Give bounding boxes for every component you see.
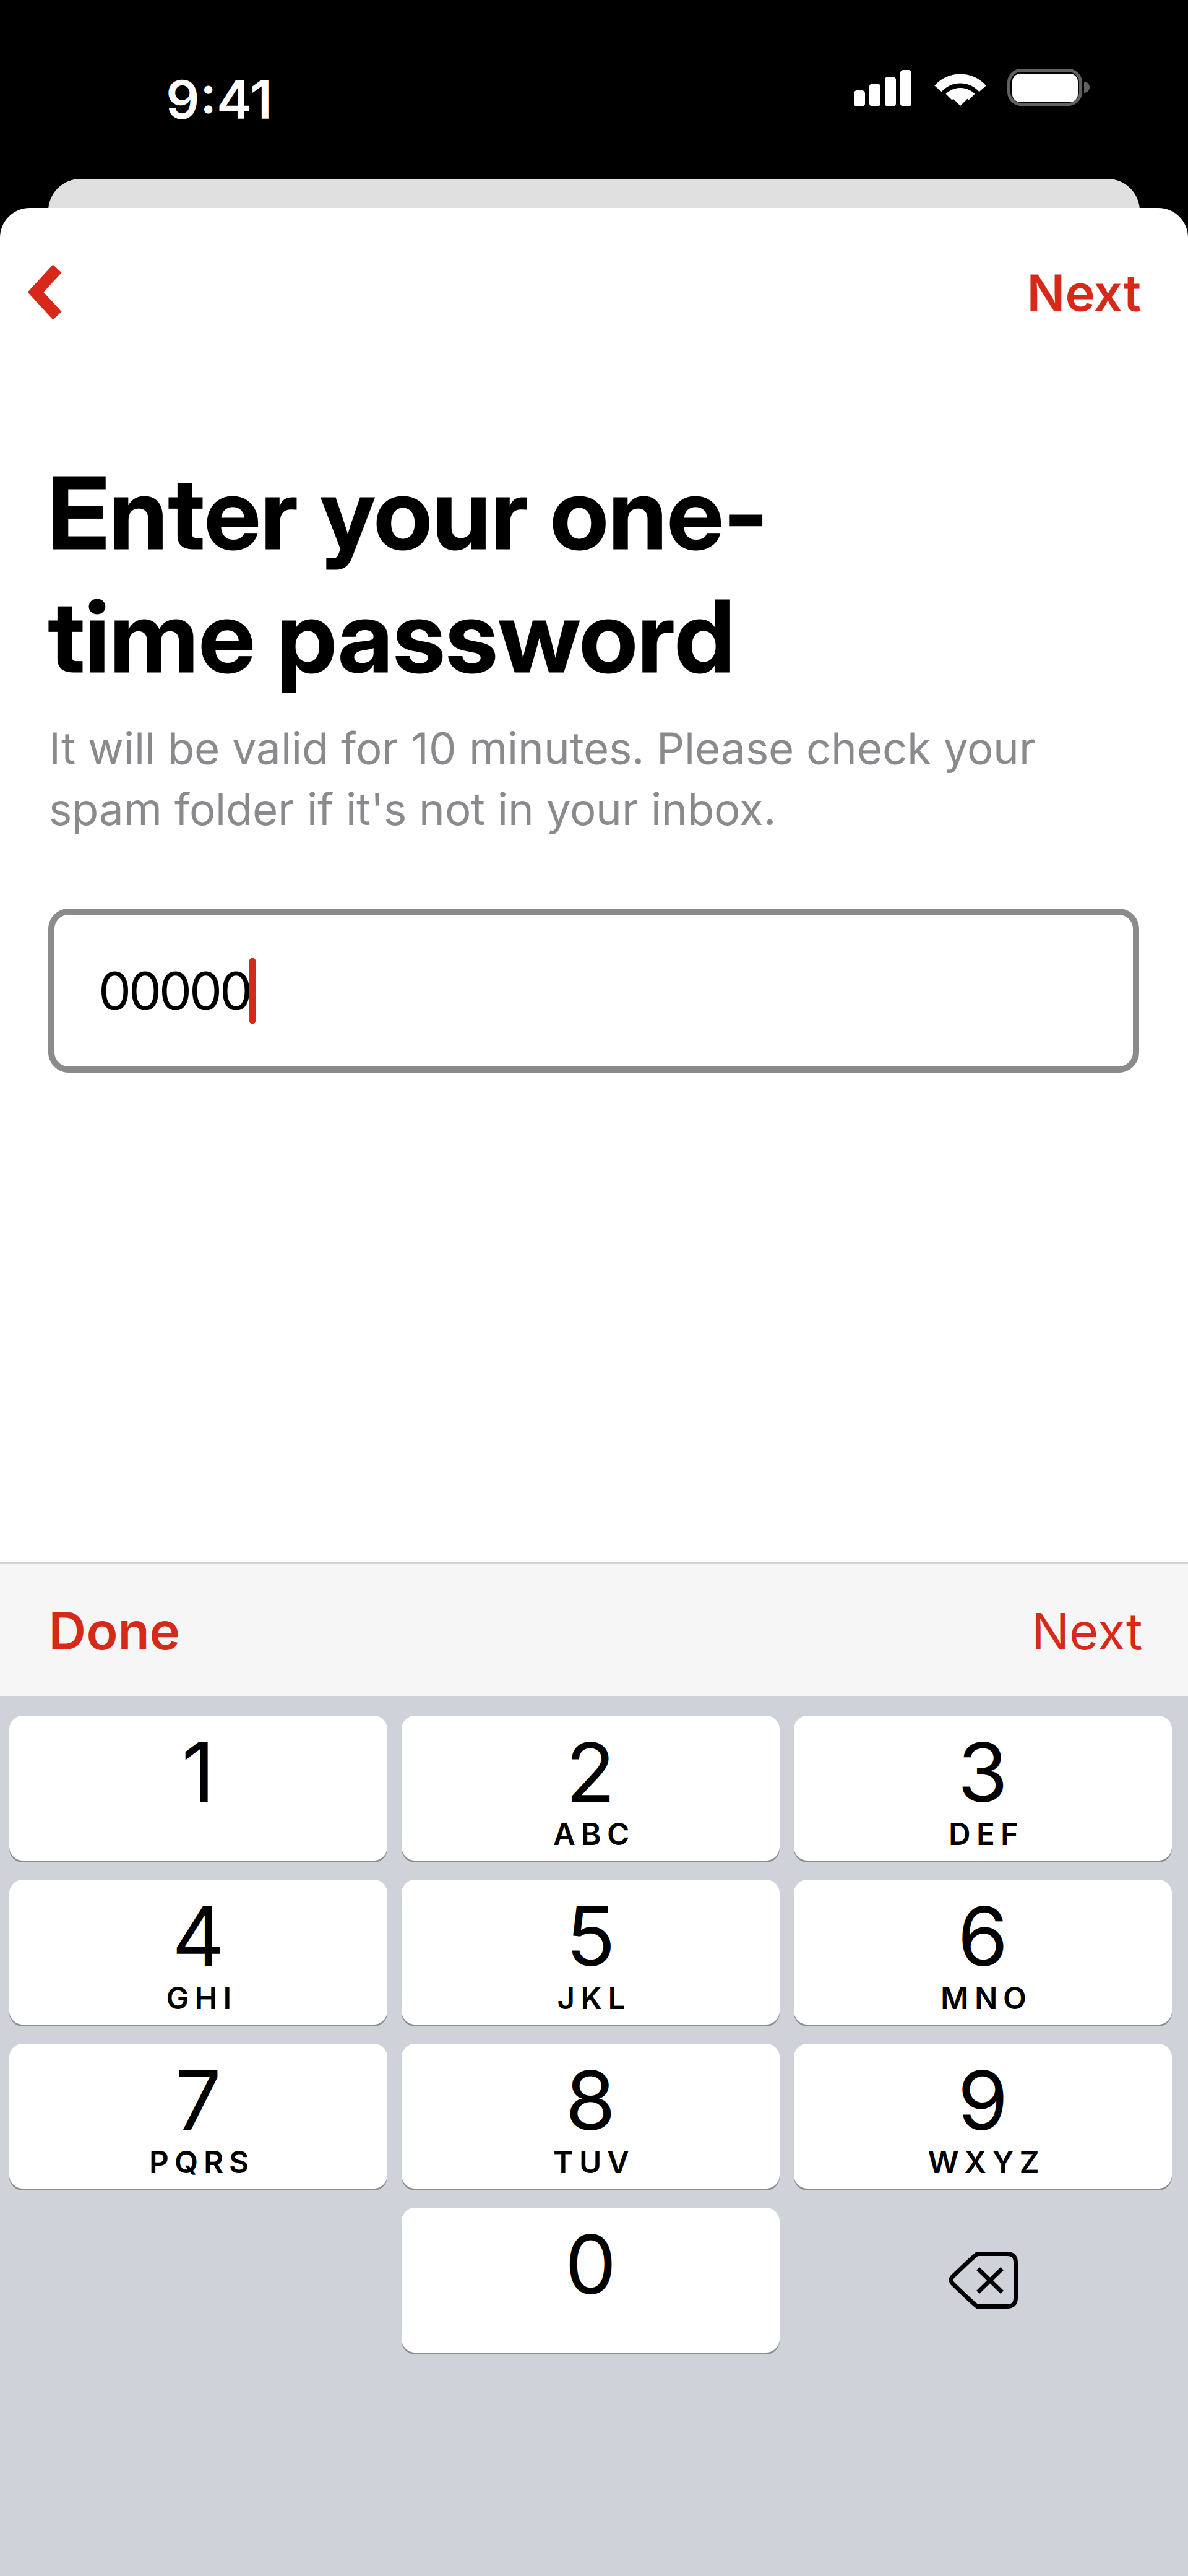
staticText: 3 <box>958 1723 1008 1821</box>
button[interactable]: 1 <box>9 1716 387 1861</box>
button[interactable]: 4 <box>9 1880 387 2025</box>
button[interactable]: 3 <box>794 1716 1172 1861</box>
staticText: TUV <box>553 2143 629 2180</box>
staticText: It will be valid for 10 minutes. Please … <box>49 722 1036 836</box>
button[interactable]: Delete <box>794 2208 1172 2353</box>
staticText: GHI <box>166 1979 232 2016</box>
staticText: 1 <box>182 1723 215 1821</box>
staticText: 5 <box>566 1887 615 1985</box>
button[interactable]: Next <box>979 1564 1188 1698</box>
staticText: DEF <box>949 1815 1018 1852</box>
button[interactable]: 8 <box>402 2044 780 2189</box>
staticText: 8 <box>565 2051 616 2149</box>
staticText: Done <box>49 1599 180 1662</box>
staticText: 0 <box>565 2215 616 2313</box>
button[interactable]: 7 <box>9 2044 387 2189</box>
staticText: 9 <box>958 2051 1008 2149</box>
staticText: JKL <box>557 1979 625 2016</box>
button[interactable]: Back <box>0 236 105 348</box>
staticText: WXYZ <box>928 2143 1039 2180</box>
staticText: ABC <box>553 1815 629 1852</box>
staticText: Enter your one-time password <box>48 452 768 697</box>
staticText: PQRS <box>149 2143 249 2180</box>
button[interactable]: 5 <box>402 1880 780 2025</box>
button[interactable]: 9 <box>794 2044 1172 2189</box>
staticText: Next <box>1027 262 1141 323</box>
button[interactable]: Done <box>1 1563 228 1698</box>
staticText: MNO <box>940 1979 1027 2016</box>
button[interactable]: Next <box>979 237 1188 348</box>
staticText: 2 <box>566 1723 616 1821</box>
button[interactable]: 6 <box>794 1880 1172 2025</box>
staticText: 7 <box>175 2051 222 2149</box>
staticText: 6 <box>958 1887 1008 1985</box>
staticText: Next <box>1031 1601 1143 1662</box>
staticText: 4 <box>172 1887 225 1985</box>
button[interactable]: 2 <box>402 1716 780 1861</box>
staticText: 00000 <box>98 959 252 1022</box>
button[interactable]: 0 <box>402 2208 780 2353</box>
staticText: 9:41 <box>166 67 272 131</box>
